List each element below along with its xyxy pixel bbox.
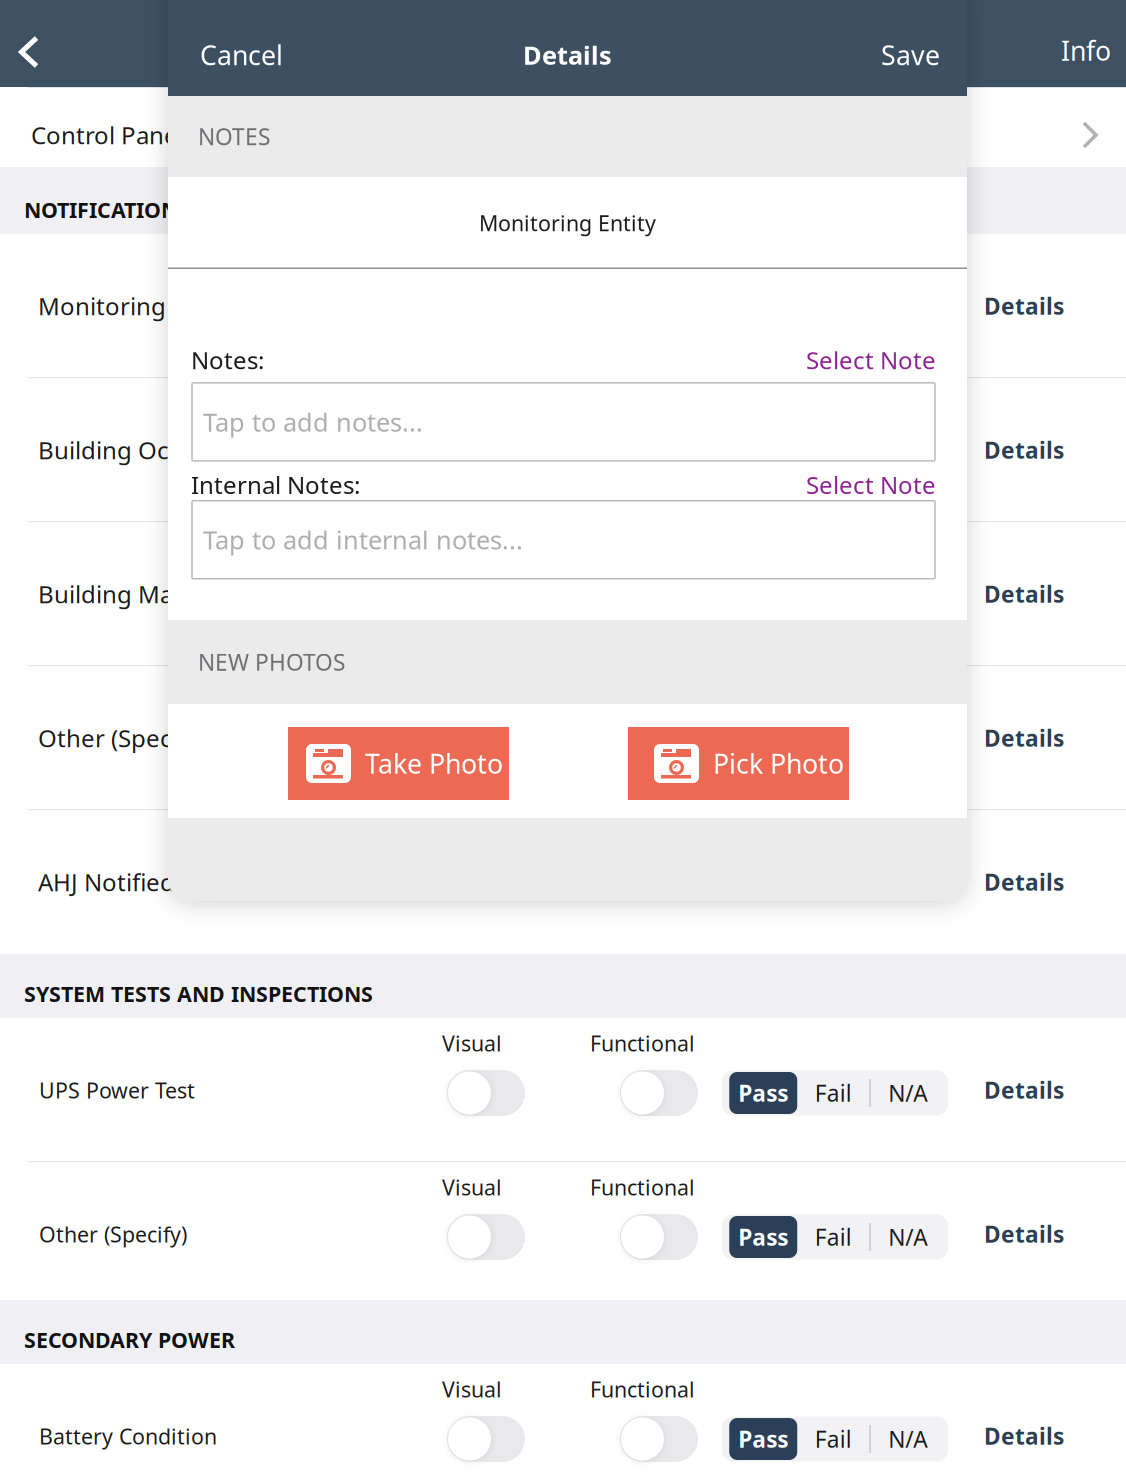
staticText: Details <box>984 1075 1064 1105</box>
staticText: SYSTEM TESTS AND INSPECTIONS <box>24 980 373 1008</box>
staticText: Select Note <box>806 469 936 501</box>
staticText: Fail <box>815 1078 852 1108</box>
staticText: N/A <box>888 1222 927 1252</box>
button[interactable]: Select Note <box>806 469 936 501</box>
button[interactable]: Pass <box>722 1416 948 1461</box>
staticText: Save <box>881 37 940 73</box>
staticText: Details <box>984 579 1064 609</box>
staticText: Details <box>984 291 1064 321</box>
staticText: N/A <box>888 1424 927 1454</box>
staticText: AHJ Notified of Impairment <box>38 866 344 898</box>
staticText: Notes: <box>191 344 264 376</box>
staticText: Details <box>984 1219 1064 1249</box>
button[interactable]: Details <box>974 427 1074 473</box>
staticText: Other (Specify) <box>39 1220 187 1248</box>
staticText: Fail <box>815 1222 852 1252</box>
staticText: NOTES <box>198 121 270 151</box>
button[interactable]: Tap to add notes... <box>192 383 935 461</box>
button[interactable]: Functional <box>620 1214 698 1260</box>
staticText: Fail <box>815 1424 852 1454</box>
staticText: Details <box>523 38 612 72</box>
staticText: Other (Specify) <box>38 722 205 754</box>
staticText: Building Occupants <box>38 434 259 466</box>
button[interactable]: Info <box>1039 8 1126 79</box>
staticText: Cancel <box>200 37 283 73</box>
staticText: Visual <box>442 1173 502 1201</box>
staticText: Visual <box>442 1375 502 1403</box>
staticText: Details <box>984 435 1064 465</box>
staticText: Functional <box>590 1375 695 1403</box>
staticText: Pass <box>738 1078 788 1108</box>
staticText: Details <box>984 723 1064 753</box>
staticText: Pass <box>738 1222 788 1252</box>
staticText: Battery Condition <box>39 1422 217 1450</box>
staticText: Building Management <box>38 578 290 610</box>
button[interactable]: Details <box>974 1067 1074 1113</box>
button[interactable]: Tap to add internal notes... <box>192 501 935 579</box>
staticText: Details <box>984 867 1064 897</box>
button[interactable]: Pass <box>722 1070 948 1115</box>
staticText: Visual <box>442 1029 502 1057</box>
button[interactable]: Visual <box>447 1070 525 1116</box>
staticText: N/A <box>888 1078 927 1108</box>
button[interactable]: Back <box>0 1 60 85</box>
button[interactable]: Details <box>974 1211 1074 1257</box>
button[interactable]: Visual <box>447 1416 525 1462</box>
button[interactable]: Functional <box>620 1416 698 1462</box>
button[interactable]: Select Note <box>806 344 936 376</box>
staticText: Control Panel <box>31 119 184 151</box>
staticText: Internal Notes: <box>191 469 360 501</box>
button[interactable]: Functional <box>620 1070 698 1116</box>
staticText: NEW PHOTOS <box>198 647 345 677</box>
button[interactable]: Details <box>974 715 1074 761</box>
staticText: Info <box>1061 33 1111 68</box>
staticText: Functional <box>590 1029 695 1057</box>
button[interactable]: Save <box>865 15 956 81</box>
staticText: Monitoring Entity <box>479 209 656 237</box>
staticText: Pass <box>738 1424 788 1454</box>
button[interactable]: Cancel <box>184 15 299 81</box>
staticText: NOTIFICATIONS <box>24 196 190 224</box>
staticText: Details <box>984 1421 1064 1451</box>
button[interactable]: Visual <box>447 1214 525 1260</box>
staticText: Functional <box>590 1173 695 1201</box>
button[interactable]: Details <box>974 1413 1074 1459</box>
button[interactable]: Pick Photo <box>628 727 849 800</box>
button[interactable]: Details <box>974 859 1074 905</box>
staticText: Select Note <box>806 344 936 376</box>
button[interactable]: Pass <box>722 1214 948 1259</box>
staticText: Tap to add internal notes... <box>203 523 523 556</box>
staticText: Take Photo <box>365 746 503 781</box>
staticText: Tap to add notes... <box>203 405 423 439</box>
button[interactable]: Details <box>974 283 1074 329</box>
button[interactable]: Details <box>974 571 1074 617</box>
button[interactable]: Take Photo <box>288 727 509 800</box>
staticText: UPS Power Test <box>39 1076 195 1104</box>
staticText: SECONDARY POWER <box>24 1326 235 1354</box>
staticText: Monitoring Entity <box>38 290 236 322</box>
staticText: Pick Photo <box>713 746 844 781</box>
